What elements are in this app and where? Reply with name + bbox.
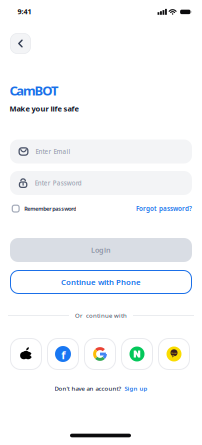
button[interactable]: Continue with Google [84, 338, 116, 370]
staticText: Continue with Phone [61, 277, 141, 287]
staticText: Remember password [24, 205, 76, 212]
button[interactable]: Continue with Naver [121, 338, 153, 370]
staticText: f [61, 347, 65, 362]
button[interactable]: Continue with Apple [10, 338, 42, 370]
staticText: Don't have an account? [54, 384, 121, 393]
staticText: Forgot password? [136, 204, 192, 213]
staticText: Enter Password [35, 179, 82, 187]
button[interactable]: Back [10, 33, 31, 54]
staticText: 9:41 [17, 7, 31, 16]
button[interactable]: Continue with Facebook [47, 338, 79, 370]
button[interactable]: Enter Password [10, 171, 192, 195]
staticText: Login [91, 245, 111, 255]
button[interactable]: Remember password [12, 205, 132, 213]
button[interactable]: Enter Email [10, 139, 192, 163]
button[interactable]: Login [10, 238, 192, 262]
button[interactable]: Forgot password? [112, 204, 192, 213]
staticText: TALK [171, 351, 177, 354]
button[interactable]: Sign up [124, 384, 147, 393]
staticText: Or continue with [75, 311, 127, 320]
button[interactable]: Continue with KakaoTalk [158, 338, 190, 370]
button[interactable]: Continue with Phone [10, 270, 192, 294]
staticText: Enter Email [35, 147, 70, 156]
staticText: Sign up [124, 384, 147, 393]
staticText: Make your life safe [9, 103, 78, 114]
staticText: CamBOT [9, 82, 59, 99]
